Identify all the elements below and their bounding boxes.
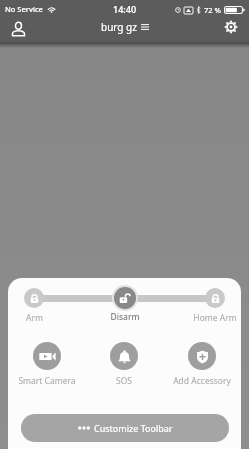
button[interactable]: Disarm	[86, 287, 164, 323]
staticText: No Service	[5, 4, 43, 14]
staticText: Add Accessory	[173, 375, 231, 387]
button[interactable]: Add Accessory	[163, 342, 241, 387]
button[interactable]: Smart Camera	[8, 342, 86, 387]
button[interactable]: SOS	[85, 342, 163, 387]
staticText: 14:40	[113, 3, 137, 15]
staticText: 72 %	[204, 5, 221, 15]
staticText: Customize Toolbar	[94, 422, 173, 434]
button[interactable]: Account	[6, 17, 30, 41]
button[interactable]: Arm	[8, 288, 73, 324]
staticText: Arm	[26, 312, 43, 324]
button[interactable]: burg gz	[101, 20, 149, 34]
staticText: Home Arm	[193, 312, 237, 324]
staticText: burg gz	[101, 20, 137, 34]
button[interactable]: Home Arm	[176, 288, 241, 324]
staticText: Smart Camera	[18, 375, 76, 387]
staticText: SOS	[116, 375, 132, 387]
button[interactable]: Customize Toolbar	[21, 414, 229, 442]
button[interactable]: Settings	[219, 15, 243, 39]
staticText: Disarm	[110, 311, 140, 323]
